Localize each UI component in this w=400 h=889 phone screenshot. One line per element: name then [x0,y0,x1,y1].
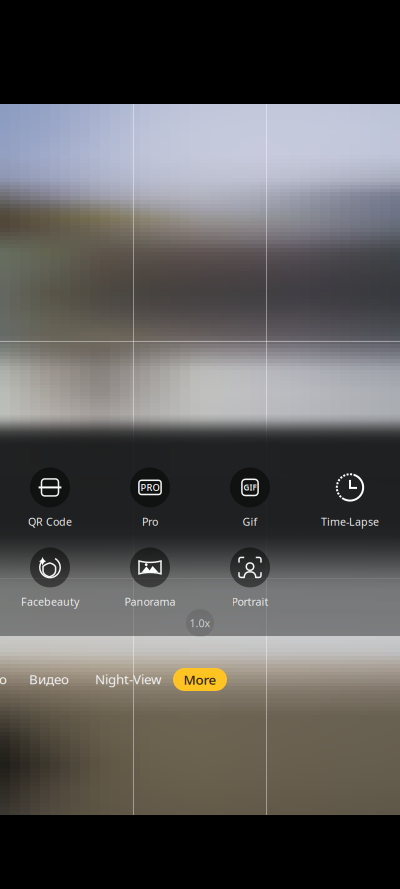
staticText: Pro [142,514,158,529]
button[interactable]: Видео [27,666,71,692]
staticText: More [183,671,216,688]
staticText: Facebeauty [21,594,79,609]
staticText: Видео [29,670,69,688]
staticText: Portrait [231,594,268,609]
staticText: GIF [243,482,256,493]
staticText: PRO [140,481,159,494]
staticText: о [0,670,7,688]
staticText: Panorama [124,594,175,609]
button[interactable]: GIF [200,463,300,533]
button[interactable]: Portrait [200,543,300,613]
staticText: Night-View [95,670,161,688]
button[interactable]: PRO [100,463,200,533]
staticText: Gif [242,514,257,529]
button[interactable]: QR Code [0,463,100,533]
button[interactable]: Night-View [89,666,167,692]
staticText: 1.0x [189,616,210,630]
button[interactable]: о [0,666,10,692]
button[interactable]: Facebeauty [0,543,100,613]
button[interactable]: Panorama [100,543,200,613]
button[interactable]: 1.0x [186,609,214,637]
button[interactable]: More [173,668,227,691]
staticText: QR Code [28,514,72,529]
staticText: Time-Lapse [321,514,379,529]
button[interactable]: Time-Lapse [300,463,400,533]
